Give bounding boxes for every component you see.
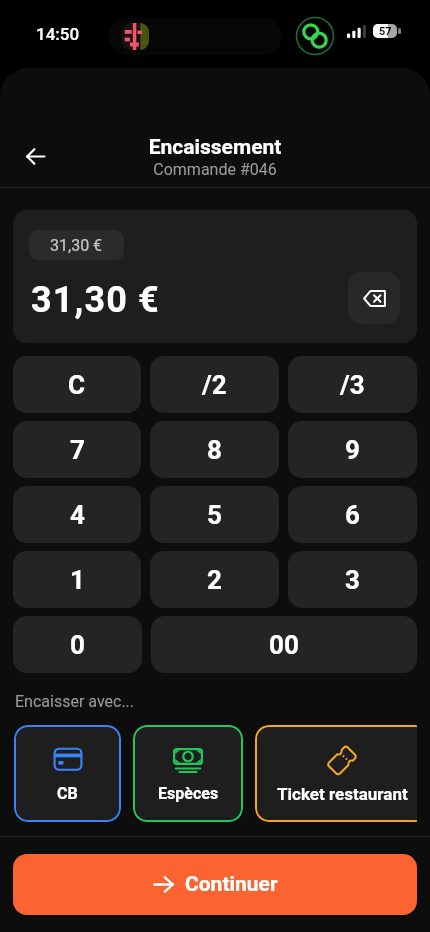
- staticText: 3: [345, 565, 360, 595]
- button[interactable]: 8: [150, 421, 279, 478]
- staticText: Espèces: [158, 784, 219, 803]
- button[interactable]: 0: [13, 616, 142, 673]
- button[interactable]: Continuer: [13, 854, 417, 915]
- staticText: 14:50: [36, 24, 80, 44]
- button[interactable]: 00: [151, 616, 417, 673]
- button[interactable]: 9: [288, 421, 417, 478]
- staticText: C: [68, 370, 86, 400]
- staticText: /3: [340, 370, 365, 400]
- staticText: 4: [70, 500, 85, 530]
- staticText: 1: [70, 565, 85, 595]
- button[interactable]: /3: [288, 356, 417, 413]
- staticText: 6: [345, 500, 360, 530]
- button[interactable]: 1: [13, 551, 141, 608]
- button[interactable]: /2: [150, 356, 279, 413]
- button[interactable]: 6: [288, 486, 417, 543]
- button[interactable]: 7: [13, 421, 141, 478]
- button[interactable]: 4: [13, 486, 141, 543]
- other: Connexion: [295, 16, 335, 56]
- button[interactable]: 2: [150, 551, 279, 608]
- staticText: 5: [207, 500, 222, 530]
- staticText: 7: [70, 435, 85, 465]
- button[interactable]: 5: [150, 486, 279, 543]
- staticText: 31,30 €: [31, 279, 160, 321]
- staticText: Continuer: [185, 872, 278, 897]
- button[interactable]: CB: [14, 725, 121, 822]
- staticText: /2: [202, 370, 227, 400]
- button[interactable]: Ticket restaurant: [255, 725, 417, 822]
- button[interactable]: C: [13, 356, 141, 413]
- staticText: Commande #046: [0, 160, 430, 179]
- staticText: 57: [379, 25, 392, 38]
- staticText: Ticket restaurant: [277, 784, 408, 804]
- staticText: 00: [269, 630, 299, 660]
- button[interactable]: Retour: [14, 135, 57, 178]
- staticText: 9: [345, 435, 360, 465]
- button[interactable]: Espèces: [133, 725, 243, 822]
- staticText: 0: [70, 630, 85, 660]
- button[interactable]: Effacer: [348, 272, 400, 324]
- staticText: 2: [207, 565, 222, 595]
- staticText: Encaisser avec...: [15, 692, 135, 711]
- staticText: 31,30 €: [50, 236, 103, 255]
- staticText: Encaissement: [0, 135, 430, 160]
- staticText: CB: [57, 784, 78, 803]
- button[interactable]: 3: [288, 551, 417, 608]
- staticText: 8: [207, 435, 222, 465]
